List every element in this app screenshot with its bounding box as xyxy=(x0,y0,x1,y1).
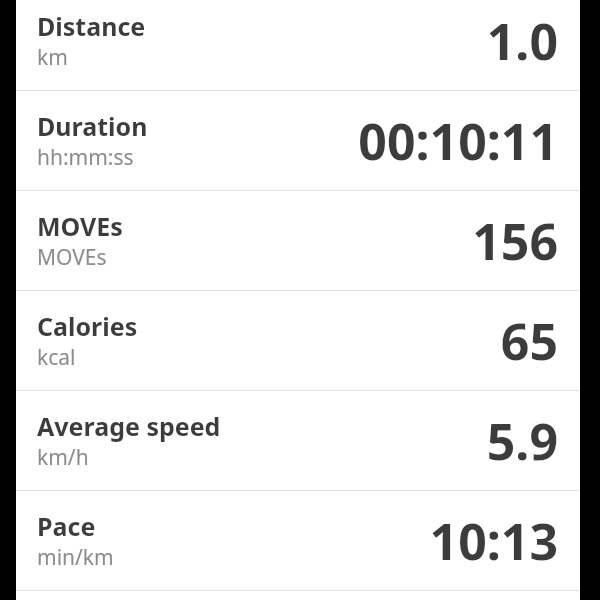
staticText: Distance xyxy=(37,9,146,43)
staticText: min/km xyxy=(37,543,114,572)
staticText: kcal xyxy=(37,343,76,372)
staticText: Duration xyxy=(37,109,148,143)
staticText: 1.0 xyxy=(486,7,558,75)
staticText: 10:13 xyxy=(429,507,558,575)
staticText: km/h xyxy=(37,443,89,472)
staticText: km xyxy=(37,43,68,72)
button[interactable]: Calories xyxy=(16,291,580,391)
button[interactable]: Pace xyxy=(16,491,580,591)
staticText: 5.9 xyxy=(486,407,558,475)
button[interactable]: Duration xyxy=(16,91,580,191)
staticText: 00:10:11 xyxy=(358,107,558,175)
staticText: Average speed xyxy=(37,409,221,443)
staticText: MOVEs xyxy=(37,243,107,272)
staticText: Pace xyxy=(37,509,96,543)
staticText: hh:mm:ss xyxy=(37,143,134,172)
button[interactable]: MOVEs xyxy=(16,191,580,291)
staticText: 65 xyxy=(500,307,558,375)
staticText: MOVEs xyxy=(37,209,123,243)
staticText: 156 xyxy=(472,207,558,275)
button[interactable]: Distance xyxy=(16,0,580,91)
button[interactable]: Average speed xyxy=(16,391,580,491)
staticText: Calories xyxy=(37,309,138,343)
